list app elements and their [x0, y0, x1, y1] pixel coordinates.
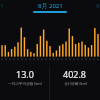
- staticText: 合計距離 (km): [64, 81, 87, 86]
- staticText: 13.0: [16, 68, 34, 80]
- button[interactable]: 13.0: [0, 66, 50, 86]
- button[interactable]: 8月 2021: [38, 0, 63, 8]
- staticText: 8月 2021: [38, 2, 63, 10]
- button[interactable]: 402.8: [50, 66, 100, 86]
- staticText: 一日の平均歩数 (km): [8, 81, 42, 86]
- button[interactable]: 7月 2021: [0, 2, 4, 10]
- button[interactable]: 9月 2021: [96, 2, 100, 10]
- staticText: 402.8: [63, 68, 87, 80]
